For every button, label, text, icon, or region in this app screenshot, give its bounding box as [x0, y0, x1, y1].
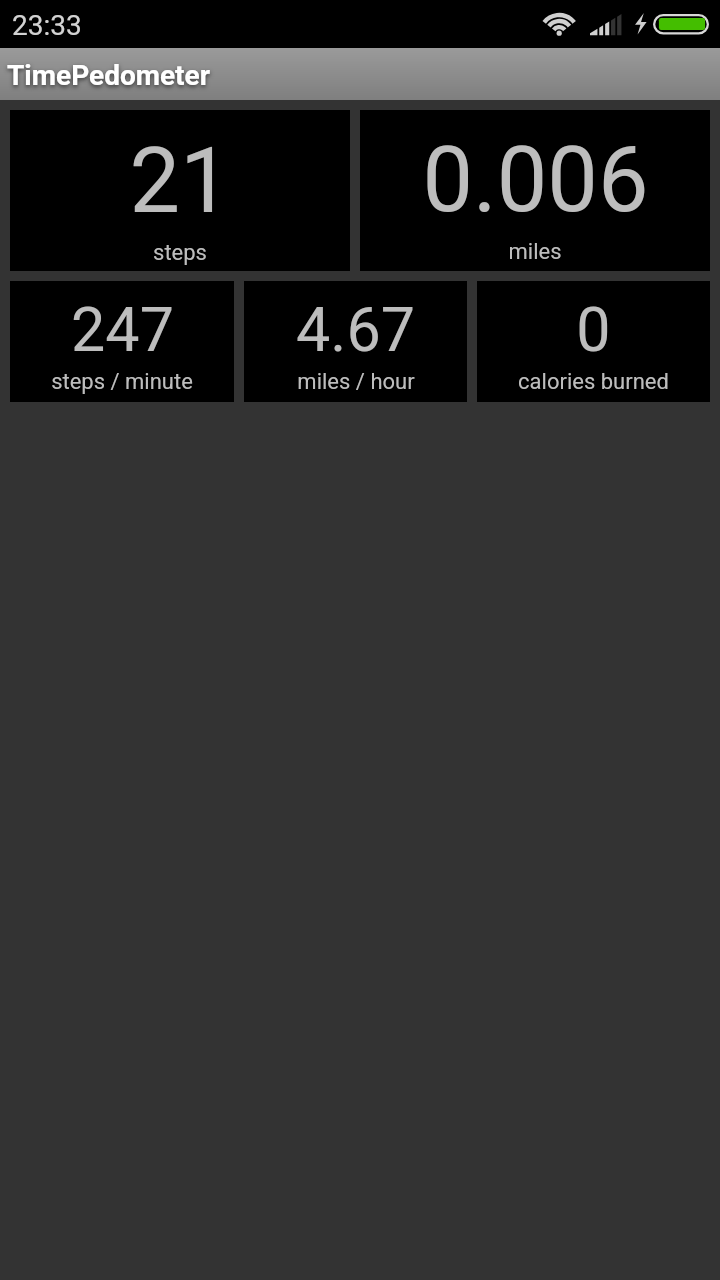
staticText: 21: [129, 129, 231, 234]
staticText: calories burned: [518, 369, 669, 395]
staticText: 4.67: [296, 294, 415, 365]
button[interactable]: 4.67: [244, 281, 467, 402]
staticText: miles: [508, 239, 562, 265]
staticText: 0: [576, 294, 611, 365]
staticText: steps / minute: [51, 369, 193, 395]
other: Wi-Fi signal: [543, 12, 576, 37]
staticText: 0.006: [422, 128, 649, 233]
staticText: TimePedometer: [7, 59, 210, 92]
other: Charging: [635, 13, 648, 36]
staticText: miles / hour: [297, 369, 415, 395]
button[interactable]: 21: [10, 110, 350, 271]
button[interactable]: 0.006: [360, 110, 710, 271]
staticText: 23:33: [12, 9, 82, 42]
other: Battery: [653, 14, 711, 36]
button[interactable]: 0: [477, 281, 710, 402]
staticText: 247: [71, 294, 174, 365]
button[interactable]: 247: [10, 281, 234, 402]
other: Cellular signal: [590, 14, 622, 36]
staticText: steps: [153, 240, 207, 266]
